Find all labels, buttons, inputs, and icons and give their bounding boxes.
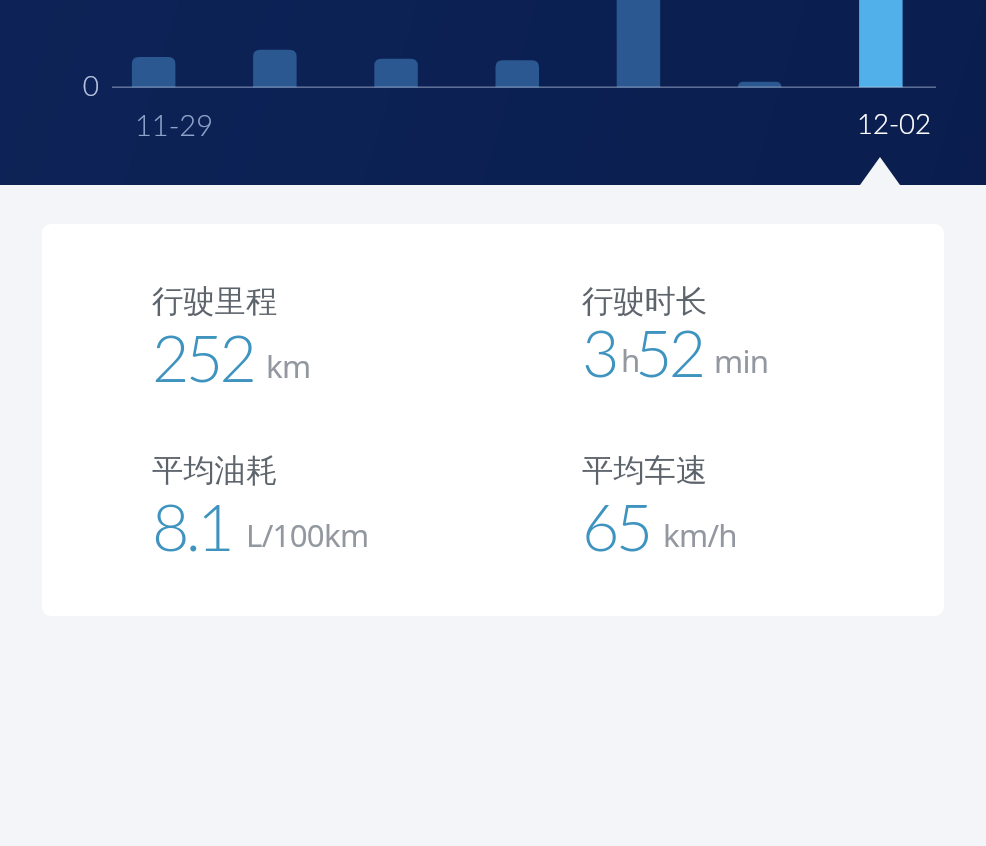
staticText: L/100km bbox=[246, 514, 369, 556]
button[interactable]: Day 12-03 bbox=[605, 0, 673, 97]
staticText: km bbox=[266, 345, 311, 387]
staticText: min bbox=[714, 340, 769, 382]
staticText: 52 bbox=[635, 313, 703, 390]
button[interactable]: Day 12-01 bbox=[362, 0, 430, 97]
button[interactable] bbox=[142, 443, 542, 551]
staticText: 252 bbox=[152, 318, 254, 395]
button[interactable]: Day 11-29 bbox=[120, 0, 188, 97]
staticText: 8.1 bbox=[152, 487, 232, 564]
button[interactable] bbox=[572, 443, 944, 551]
staticText: 65 bbox=[582, 487, 650, 564]
button[interactable]: Day 11-30 bbox=[241, 0, 309, 97]
staticText: 3 bbox=[582, 313, 616, 390]
staticText: 行驶里程 bbox=[152, 282, 278, 321]
staticText: 平均车速 bbox=[582, 451, 708, 490]
button[interactable]: 行驶里程 bbox=[42, 224, 944, 616]
button[interactable] bbox=[142, 274, 542, 382]
staticText: 12-02 bbox=[857, 107, 931, 140]
staticText: h bbox=[621, 339, 640, 381]
staticText: 行驶时长 bbox=[582, 282, 708, 321]
button[interactable]: Day 12-05 bbox=[847, 0, 915, 97]
staticText: km/h bbox=[663, 514, 737, 556]
staticText: 平均油耗 bbox=[152, 451, 278, 490]
button[interactable]: Day 12-04 bbox=[726, 0, 794, 97]
staticText: 11-29 bbox=[135, 107, 214, 142]
button[interactable]: Day 12-02 bbox=[483, 0, 551, 97]
button[interactable] bbox=[572, 274, 944, 382]
staticText: 0 bbox=[62, 68, 99, 102]
